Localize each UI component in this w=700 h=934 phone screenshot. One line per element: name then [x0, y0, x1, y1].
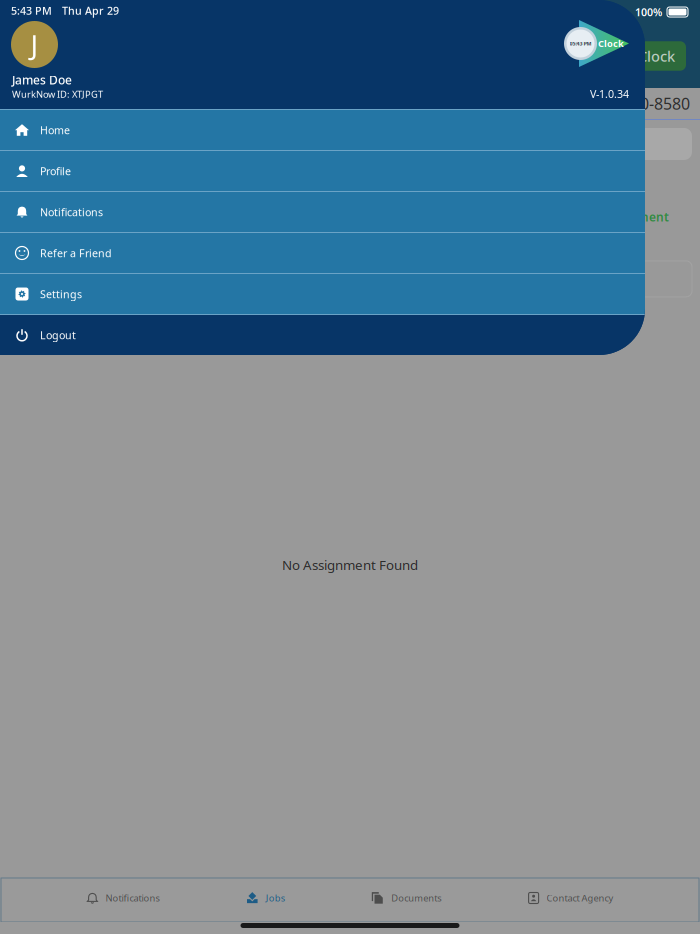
staticText: Current Assignment	[598, 193, 669, 225]
staticText: Contact Agency	[547, 892, 614, 904]
staticText: Notifications	[105, 892, 159, 904]
staticText: Profile	[40, 164, 71, 178]
staticText: Logout	[40, 328, 76, 342]
button[interactable]: Settings	[0, 273, 645, 314]
button[interactable]: Home	[0, 109, 645, 150]
staticText: No Assignment Found	[282, 556, 418, 574]
staticText: 05:43 PM	[569, 40, 591, 47]
staticText: Refer a Friend	[40, 246, 112, 260]
staticText: J	[30, 26, 38, 63]
staticText: James Doe	[12, 72, 72, 88]
staticText: Clock	[638, 46, 675, 66]
staticText: V-1.0.34	[590, 87, 629, 101]
staticText: Thu Apr 29	[62, 3, 119, 18]
button[interactable]: Jobs	[246, 885, 285, 911]
staticText: Jobs	[266, 892, 285, 904]
staticText: 5:43 PM	[11, 3, 52, 18]
button[interactable]: Notifications	[86, 885, 159, 911]
staticText: Notifications	[40, 205, 103, 219]
staticText: Documents	[391, 892, 441, 904]
button[interactable]: Documents	[371, 885, 441, 911]
staticText: Clock	[598, 37, 624, 50]
button[interactable]: Clock	[627, 41, 686, 71]
button[interactable]: Notifications	[0, 191, 645, 232]
staticText: 100%	[635, 5, 662, 19]
staticText: (555) 600-8580	[581, 93, 690, 114]
button[interactable]: Profile	[0, 150, 645, 191]
button[interactable]: Logout	[0, 314, 645, 355]
staticText: Settings	[40, 287, 82, 301]
staticText: Home	[40, 123, 70, 137]
button[interactable]: Contact Agency	[528, 885, 614, 911]
staticText: WurkNow ID: XTJPGT	[12, 88, 103, 100]
button[interactable]: Refer a Friend	[0, 232, 645, 273]
